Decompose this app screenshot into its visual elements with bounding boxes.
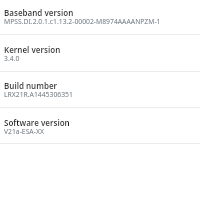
- staticText: 3.4.0: [4, 54, 20, 63]
- staticText: Software version: [4, 117, 70, 128]
- button[interactable]: Software version: [0, 108, 200, 144]
- staticText: V21a-ESA-XX: [4, 127, 44, 136]
- button[interactable]: Build number: [0, 72, 200, 108]
- staticText: Build number: [4, 80, 58, 91]
- staticText: Baseband version: [4, 7, 74, 18]
- button[interactable]: Baseband version: [0, 0, 200, 35]
- staticText: Kernel version: [4, 44, 61, 55]
- staticText: LRX21R.A1445306351: [4, 90, 73, 99]
- button[interactable]: Kernel version: [0, 35, 200, 72]
- staticText: MPSS.DI.2.0.1.c1.13.2-00002-M8974AAAANPZ…: [4, 17, 161, 26]
